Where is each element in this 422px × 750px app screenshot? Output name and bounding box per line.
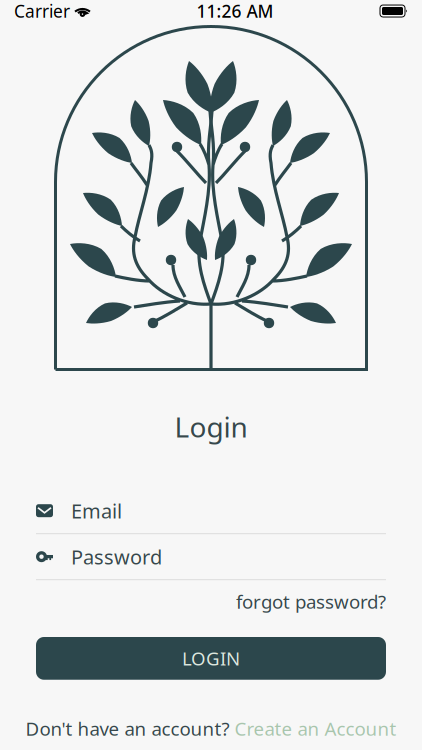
staticText: Password xyxy=(71,543,162,570)
staticText: forgot password? xyxy=(236,589,386,614)
staticText: Login xyxy=(174,408,247,445)
button[interactable]: forgot password? xyxy=(236,589,386,614)
staticText: Don't have an account? xyxy=(25,716,229,741)
button[interactable]: Create an Account xyxy=(234,716,396,741)
button[interactable]: LOGIN xyxy=(36,637,386,680)
staticText: Carrier xyxy=(14,0,70,22)
staticText: LOGIN xyxy=(182,646,240,671)
staticText: Create an Account xyxy=(234,716,396,741)
staticText: 11:26 AM xyxy=(196,0,273,22)
staticText: Email xyxy=(71,497,122,524)
